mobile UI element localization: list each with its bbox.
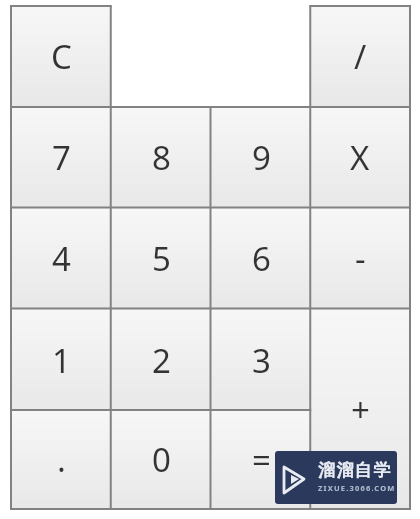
button[interactable]: 4 bbox=[11, 208, 111, 309]
button[interactable]: 2 bbox=[111, 309, 211, 411]
button[interactable]: / bbox=[310, 6, 410, 107]
button[interactable]: - bbox=[310, 208, 410, 309]
staticText: X bbox=[350, 135, 370, 180]
button[interactable]: 0 bbox=[111, 410, 211, 509]
staticText: ZIXUE.3066.COM bbox=[318, 483, 396, 493]
staticText: 7 bbox=[52, 135, 71, 180]
button[interactable]: C bbox=[11, 6, 111, 107]
staticText: 2 bbox=[152, 338, 171, 383]
staticText: 9 bbox=[252, 135, 271, 180]
button[interactable]: 8 bbox=[111, 107, 211, 208]
staticText: / bbox=[354, 34, 367, 79]
button[interactable]: 溜溜自学 bbox=[275, 451, 397, 504]
button[interactable]: 6 bbox=[211, 208, 311, 309]
button[interactable]: = bbox=[211, 410, 311, 509]
button[interactable]: 5 bbox=[111, 208, 211, 309]
button[interactable]: 1 bbox=[11, 309, 111, 411]
staticText: - bbox=[355, 236, 366, 281]
staticText: 1 bbox=[52, 338, 71, 383]
staticText: = bbox=[252, 437, 271, 482]
staticText: 8 bbox=[152, 135, 171, 180]
staticText: + bbox=[351, 387, 370, 432]
button[interactable]: . bbox=[11, 410, 111, 509]
staticText: 3 bbox=[252, 338, 271, 383]
button[interactable]: 3 bbox=[211, 309, 311, 411]
staticText: C bbox=[51, 34, 72, 79]
staticText: 5 bbox=[152, 236, 171, 281]
staticText: . bbox=[57, 437, 66, 482]
button[interactable]: 9 bbox=[211, 107, 311, 208]
staticText: 溜溜自学 bbox=[317, 460, 391, 481]
button[interactable]: X bbox=[310, 107, 410, 208]
button[interactable]: 7 bbox=[11, 107, 111, 208]
staticText: 6 bbox=[252, 236, 271, 281]
button[interactable]: + bbox=[310, 309, 410, 510]
staticText: 0 bbox=[152, 437, 171, 482]
staticText: 4 bbox=[52, 236, 71, 281]
